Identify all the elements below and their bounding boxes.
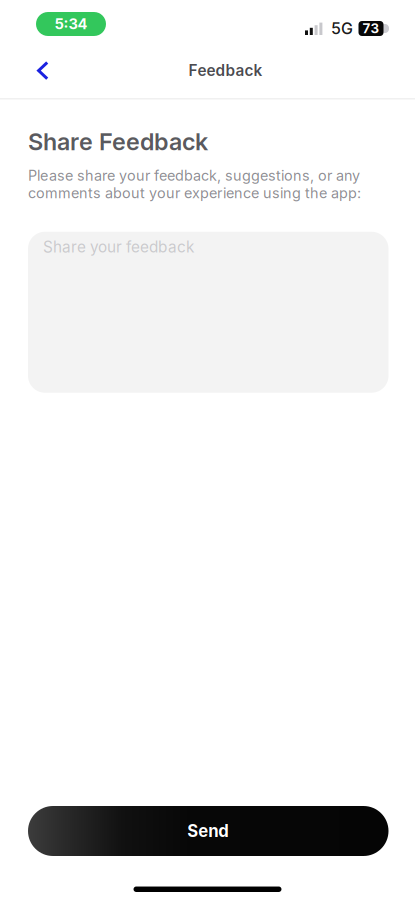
staticText: 73 bbox=[362, 20, 379, 36]
button[interactable]: Back bbox=[23, 50, 63, 95]
staticText: 5:34 bbox=[54, 15, 87, 33]
staticText: Feedback bbox=[188, 61, 262, 80]
staticText: Share your feedback bbox=[43, 238, 194, 256]
staticText: Please share your feedback, suggestions,… bbox=[28, 167, 361, 202]
staticText: Send bbox=[187, 821, 229, 841]
staticText: Share Feedback bbox=[28, 127, 208, 156]
button[interactable]: Share your feedback bbox=[28, 232, 388, 393]
button[interactable]: Send bbox=[28, 806, 388, 856]
staticText: 5G bbox=[331, 19, 353, 38]
